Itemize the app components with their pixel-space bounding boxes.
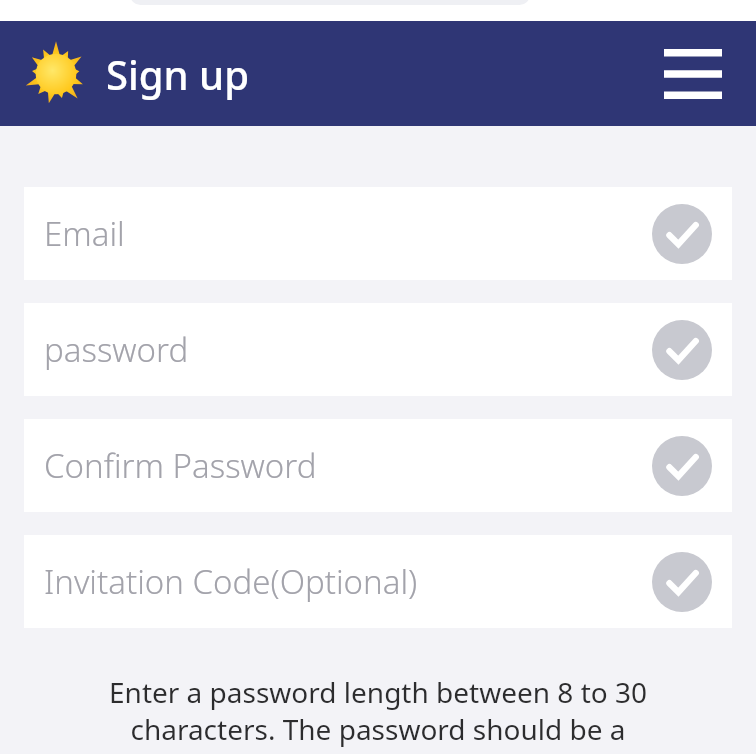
staticText: password [44,327,652,372]
staticText: Enter a password length between 8 to 30 … [96,673,660,754]
staticText: Email [44,211,652,256]
staticText: Sign up [106,47,249,101]
button[interactable]: Confirm Password [24,419,732,512]
button[interactable]: Invitation Code(Optional) [24,535,732,628]
button[interactable]: Menu [650,31,736,117]
staticText: Confirm Password [44,443,652,488]
button[interactable]: password [24,303,732,396]
staticText: Invitation Code(Optional) [44,559,652,604]
button[interactable]: Email [24,187,732,280]
